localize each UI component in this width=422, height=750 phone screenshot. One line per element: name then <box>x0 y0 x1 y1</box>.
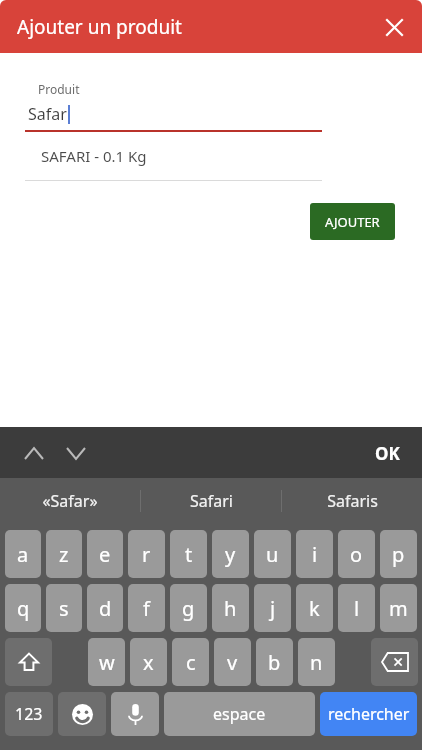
button[interactable]: c <box>172 638 209 686</box>
staticText: AJOUTER <box>325 213 380 231</box>
staticText: b <box>268 649 281 676</box>
staticText: i <box>312 541 318 568</box>
button[interactable]: l <box>338 584 375 632</box>
button[interactable]: h <box>212 584 249 632</box>
staticText: k <box>309 595 320 622</box>
staticText: OK <box>375 442 400 465</box>
button[interactable]: m <box>380 584 417 632</box>
button[interactable]: q <box>5 584 41 632</box>
button[interactable]: OK <box>362 431 412 475</box>
button[interactable]: AJOUTER <box>310 203 395 240</box>
button[interactable]: o <box>338 530 375 578</box>
staticText: f <box>143 595 150 622</box>
button[interactable]: t <box>170 530 207 578</box>
button[interactable]: k <box>296 584 333 632</box>
button[interactable]: x <box>130 638 167 686</box>
staticText: j <box>270 595 276 622</box>
staticText: x <box>143 649 154 676</box>
staticText: espace <box>213 703 266 725</box>
button[interactable]: n <box>298 638 335 686</box>
button[interactable]: d <box>87 584 123 632</box>
button[interactable]: p <box>380 530 417 578</box>
button[interactable]: e <box>87 530 123 578</box>
staticText: p <box>392 541 405 568</box>
button[interactable]: SAFARI - 0.1 Kg <box>25 132 322 180</box>
button[interactable]: i <box>296 530 333 578</box>
button[interactable]: f <box>128 584 165 632</box>
staticText: 123 <box>15 703 43 725</box>
button[interactable]: Majuscule <box>5 638 52 686</box>
staticText: SAFARI - 0.1 Kg <box>41 146 147 166</box>
staticText: l <box>354 595 360 622</box>
staticText: w <box>99 649 115 676</box>
button[interactable]: r <box>128 530 165 578</box>
button[interactable]: w <box>88 638 125 686</box>
staticText: q <box>17 595 30 622</box>
button[interactable]: espace <box>164 692 315 736</box>
button[interactable]: 123 <box>5 692 53 736</box>
staticText: d <box>99 595 112 622</box>
staticText: h <box>224 595 237 622</box>
staticText: rechercher <box>328 703 410 725</box>
button[interactable]: Suivant <box>56 433 96 473</box>
button[interactable]: v <box>214 638 251 686</box>
staticText: c <box>186 649 196 676</box>
button[interactable]: g <box>170 584 207 632</box>
button[interactable]: Safaris <box>282 478 422 524</box>
button[interactable]: Fermer <box>374 7 414 47</box>
staticText: e <box>99 541 111 568</box>
staticText: Safaris <box>327 490 378 512</box>
button[interactable]: b <box>256 638 293 686</box>
button[interactable]: Emoji <box>58 692 106 736</box>
staticText: u <box>266 541 279 568</box>
button[interactable]: rechercher <box>320 692 417 736</box>
button[interactable]: j <box>254 584 291 632</box>
staticText: n <box>310 649 323 676</box>
button[interactable]: s <box>46 584 82 632</box>
button[interactable]: a <box>5 530 41 578</box>
button[interactable]: u <box>254 530 291 578</box>
staticText: a <box>17 541 29 568</box>
staticText: s <box>59 595 69 622</box>
staticText: «Safar» <box>42 490 98 512</box>
staticText: Safari <box>190 490 233 512</box>
staticText: v <box>227 649 238 676</box>
button[interactable]: y <box>212 530 249 578</box>
staticText: r <box>142 541 151 568</box>
staticText: Ajouter un produit <box>17 14 182 40</box>
staticText: z <box>59 541 69 568</box>
button[interactable]: Supprimer <box>371 638 418 686</box>
staticText: y <box>225 541 236 568</box>
staticText: o <box>350 541 363 568</box>
button[interactable]: Safari <box>141 478 281 524</box>
staticText: Produit <box>38 81 80 97</box>
staticText: g <box>182 595 195 622</box>
button[interactable]: Précédent <box>14 433 54 473</box>
button[interactable]: «Safar» <box>0 478 140 524</box>
staticText: m <box>389 595 408 622</box>
button[interactable]: z <box>46 530 82 578</box>
staticText: Safar <box>28 103 67 125</box>
button[interactable]: Safar <box>0 101 422 127</box>
staticText: t <box>185 541 193 568</box>
button[interactable]: Dictée vocale <box>111 692 159 736</box>
